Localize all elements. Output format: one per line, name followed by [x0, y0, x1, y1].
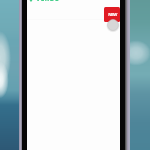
staticText: VERDE — [36, 0, 60, 2]
button[interactable]: Verde home — [28, 0, 60, 2]
staticText: NEW — [108, 12, 117, 18]
button[interactable]: Compose — [107, 19, 119, 31]
button[interactable]: NEW — [104, 7, 120, 22]
